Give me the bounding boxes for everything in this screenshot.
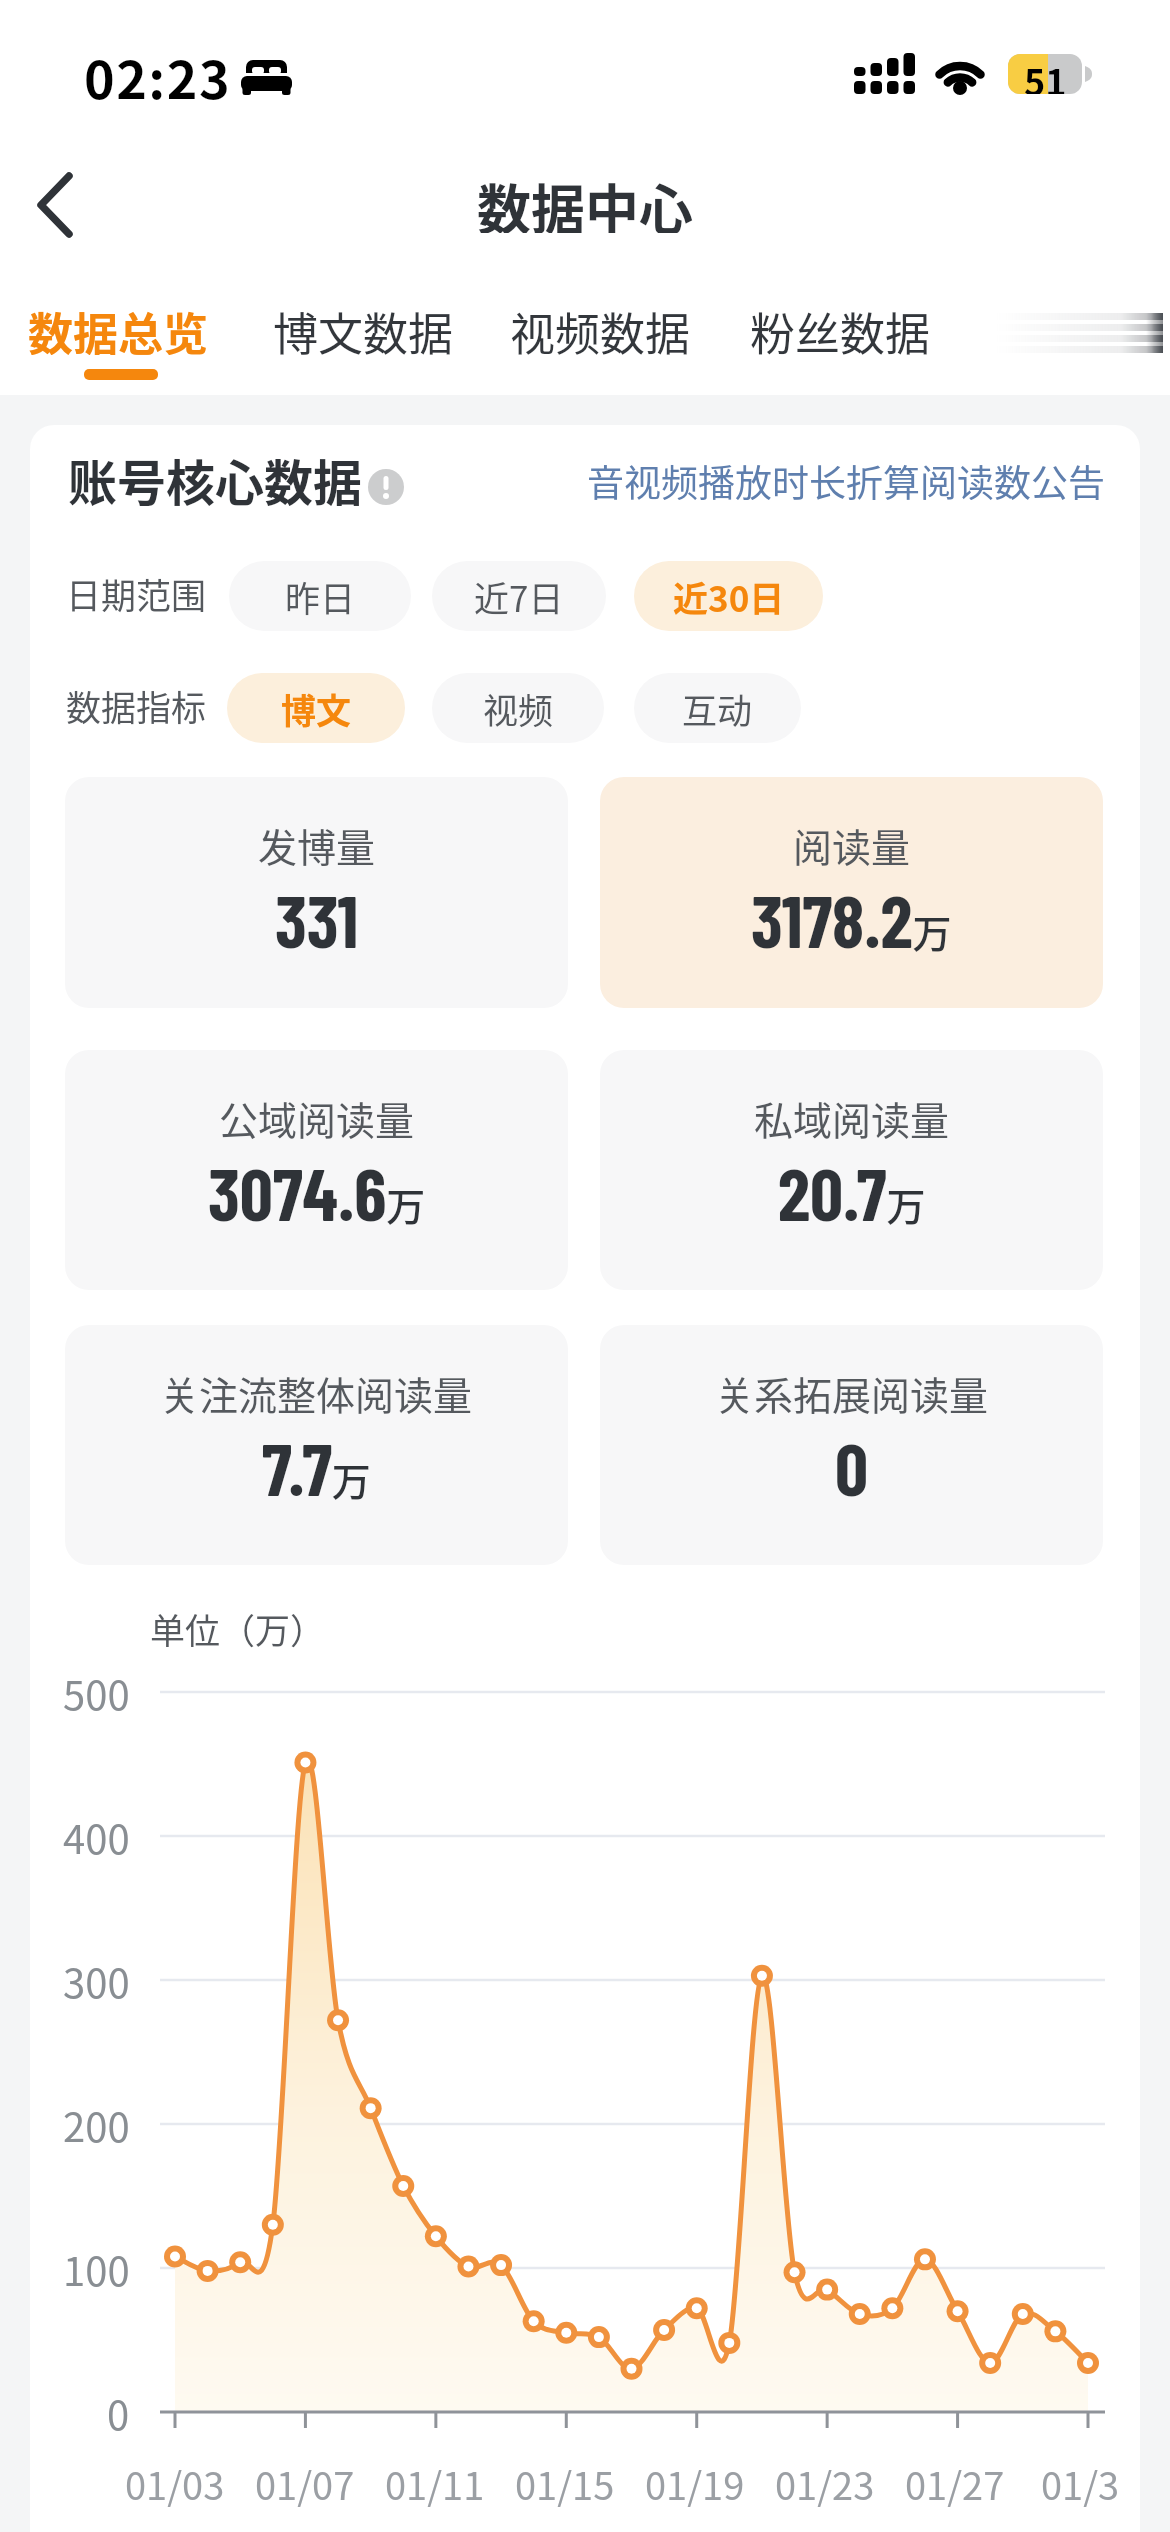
staticText: 20.7万 (778, 1148, 926, 1236)
staticText: 近7日 (474, 571, 564, 622)
button[interactable]: 私域阅读量 (600, 1050, 1103, 1290)
staticText: 01/15 (515, 2456, 615, 2508)
staticText: 500 (63, 1664, 130, 1720)
staticText: 博文 (281, 683, 352, 734)
staticText: 粉丝数据 (750, 299, 931, 355)
staticText: 01/3 (1041, 2456, 1120, 2508)
staticText: 视频 (483, 683, 554, 734)
button[interactable]: 阅读量 (600, 777, 1103, 1008)
staticText: 200 (63, 2096, 130, 2152)
staticText: 昨日 (285, 571, 356, 622)
button[interactable]: 视频 (432, 673, 604, 743)
button[interactable]: 公域阅读量 (65, 1050, 568, 1290)
staticText: 互动 (682, 683, 753, 734)
button[interactable]: 发博量 (65, 777, 568, 1008)
staticText: 近30日 (673, 571, 785, 622)
staticText: 331 (275, 875, 359, 963)
staticText: 01/27 (905, 2456, 1005, 2508)
staticText: 3178.2万 (751, 875, 952, 963)
staticText: 关系拓展阅读量 (715, 1365, 989, 1421)
staticText: 01/23 (775, 2456, 875, 2508)
staticText: 01/03 (125, 2456, 225, 2508)
button[interactable]: 关注流整体阅读量 (65, 1325, 568, 1565)
button[interactable]: 博文 (227, 673, 405, 743)
staticText: 100 (63, 2240, 130, 2296)
button[interactable]: 音视频播放时长折算阅读数公告 (575, 454, 1105, 500)
staticText: 0 (107, 2384, 130, 2440)
staticText: 51 (1024, 54, 1067, 94)
staticText: 博文数据 (273, 299, 454, 355)
button[interactable]: 互动 (634, 673, 801, 743)
button[interactable]: 昨日 (229, 561, 411, 631)
staticText: 视频数据 (510, 299, 691, 355)
staticText: 300 (63, 1952, 130, 2008)
button[interactable]: 博文数据 (263, 299, 463, 355)
staticText: 发博量 (258, 817, 376, 873)
staticText: 关注流整体阅读量 (160, 1365, 473, 1421)
staticText: 400 (63, 1808, 130, 1864)
staticText: 01/07 (255, 2456, 355, 2508)
staticText: 日期范围 (66, 568, 207, 619)
button[interactable]: 近7日 (432, 561, 606, 631)
staticText: 账号核心数据 (68, 444, 363, 506)
staticText: 单位（万） (150, 1603, 326, 1654)
staticText: 阅读量 (793, 817, 911, 873)
staticText: 0 (835, 1423, 869, 1511)
staticText: 数据指标 (66, 680, 207, 731)
button[interactable]: 近30日 (634, 561, 823, 631)
button[interactable]: 视频数据 (500, 299, 700, 355)
staticText: 数据总览 (28, 299, 209, 355)
button[interactable]: 粉丝数据 (740, 299, 940, 355)
staticText: 3074.6万 (208, 1148, 426, 1236)
staticText: 7.7万 (262, 1423, 371, 1511)
button[interactable]: 关系拓展阅读量 (600, 1325, 1103, 1565)
staticText: 数据中心 (477, 167, 693, 233)
staticText: 音视频播放时长折算阅读数公告 (587, 454, 1105, 500)
staticText: 01/19 (645, 2456, 745, 2508)
staticText: 公域阅读量 (219, 1090, 415, 1146)
button[interactable]: 数据总览 (18, 299, 218, 355)
button[interactable] (20, 165, 90, 245)
staticText: 私域阅读量 (754, 1090, 950, 1146)
staticText: 01/11 (385, 2456, 485, 2508)
staticText: 02:23 (84, 39, 232, 105)
